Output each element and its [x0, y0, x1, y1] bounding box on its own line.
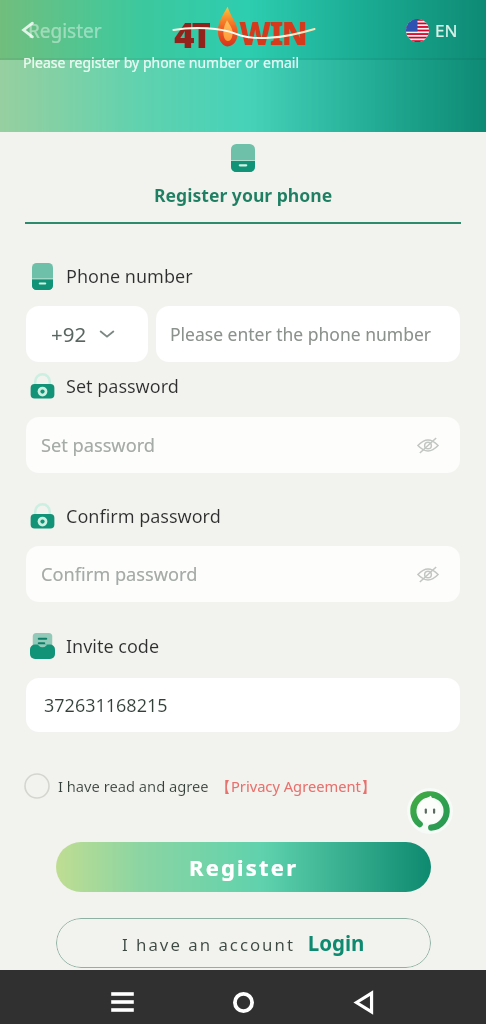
staticText: 372631168215: [44, 693, 168, 718]
staticText: EN: [435, 19, 458, 42]
staticText: Register: [189, 852, 299, 882]
button[interactable]: Back: [338, 975, 390, 1024]
staticText: Confirm password: [41, 562, 198, 587]
button[interactable]: I have an account Login: [56, 918, 431, 968]
staticText: Register your phone: [154, 183, 333, 207]
staticText: +92: [51, 320, 87, 348]
staticText: WIN: [239, 12, 307, 54]
button[interactable]: Register: [56, 842, 431, 892]
staticText: Please enter the phone number: [170, 322, 432, 346]
button[interactable]: I have read and agree 【Privacy Agreement…: [24, 772, 376, 800]
button[interactable]: Set password: [26, 417, 460, 473]
button[interactable]: Show password: [414, 431, 442, 459]
staticText: I have read and agree 【Privacy Agreement…: [58, 776, 376, 796]
button[interactable]: Confirm password: [26, 546, 460, 602]
button[interactable]: Please enter the phone number: [156, 306, 460, 362]
staticText: Set password: [66, 374, 179, 399]
staticText: Please register by phone number or email: [23, 53, 300, 72]
staticText: Confirm password: [66, 504, 221, 529]
button[interactable]: Recent apps: [96, 975, 148, 1024]
staticText: Set password: [41, 433, 155, 458]
button[interactable]: 372631168215: [26, 678, 460, 732]
staticText: Register: [28, 18, 102, 44]
staticText: Invite code: [66, 634, 160, 659]
staticText: 4T: [174, 11, 210, 57]
staticText: Phone number: [66, 264, 193, 289]
button[interactable]: Customer support chat: [407, 788, 453, 834]
button[interactable]: Home: [217, 975, 269, 1024]
staticText: I have an account Login: [122, 929, 365, 957]
button[interactable]: EN: [406, 15, 458, 45]
button[interactable]: Show password: [414, 560, 442, 588]
button[interactable]: +92: [26, 306, 148, 362]
button[interactable]: Register: [18, 14, 114, 46]
